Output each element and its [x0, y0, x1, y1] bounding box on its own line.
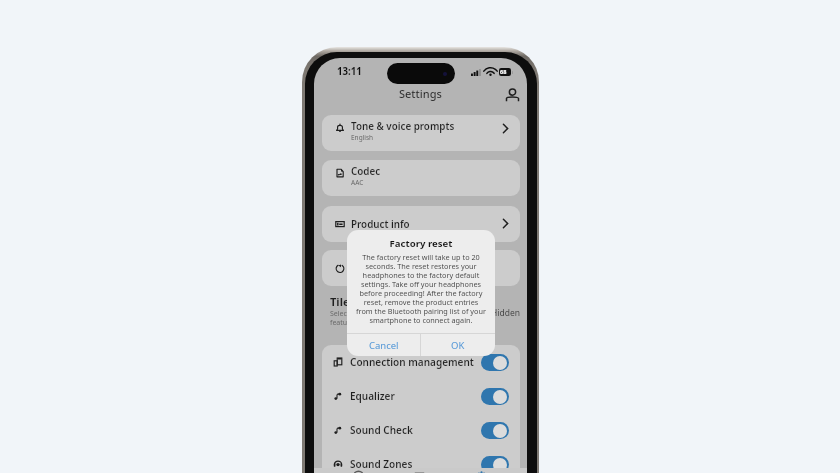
staticText: Tile: [330, 294, 350, 309]
button[interactable]: Product info: [322, 206, 520, 242]
staticText: Sound Check: [350, 423, 413, 437]
button[interactable]: Sound Zones: [333, 447, 509, 473]
button[interactable]: Tone & voice prompts: [322, 115, 520, 151]
staticText: 68: [500, 68, 507, 76]
staticText: Connection management: [350, 355, 474, 369]
staticText: 13:11: [337, 65, 362, 78]
button[interactable]: Sound Check: [333, 413, 509, 447]
button[interactable]: Devices: [405, 468, 433, 473]
staticText: Select which features should be shown an…: [330, 309, 493, 327]
staticText: Equalizer: [350, 389, 395, 403]
button[interactable]: Equalizer: [333, 379, 509, 413]
staticText: Hidden: [491, 307, 520, 319]
staticText: Cancel: [369, 339, 399, 352]
staticText: Tone & voice prompts: [351, 120, 455, 133]
button[interactable]: Settings: [467, 468, 495, 473]
button[interactable]: Home: [344, 468, 372, 473]
staticText: OK: [451, 339, 465, 352]
button[interactable]: Factory reset: [322, 250, 520, 286]
button[interactable]: OK: [421, 334, 495, 356]
staticText: The factory reset will take up to 20 sec…: [356, 252, 486, 325]
staticText: AAC: [351, 178, 364, 187]
staticText: Factory reset: [347, 237, 495, 250]
staticText: Product info: [351, 218, 410, 231]
staticText: Codec: [351, 165, 381, 178]
staticText: Sound Zones: [350, 457, 413, 471]
button[interactable]: Cancel: [347, 334, 420, 356]
button[interactable]: Account: [502, 85, 522, 105]
staticText: Settings: [399, 86, 442, 101]
button[interactable]: Codec: [322, 160, 520, 196]
staticText: Factory reset: [351, 262, 414, 275]
staticText: English: [351, 133, 374, 142]
button[interactable]: Connection management: [333, 345, 509, 379]
